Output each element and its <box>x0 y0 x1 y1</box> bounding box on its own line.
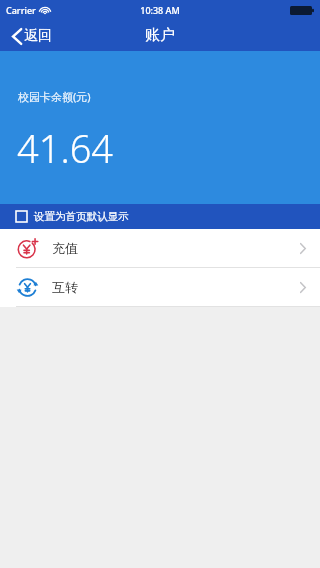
button[interactable]: 设置为首页默认显示 <box>0 204 320 229</box>
staticText: 充值 <box>52 240 78 256</box>
staticText: 互转 <box>52 279 78 295</box>
staticText: 校园卡余额(元) <box>18 89 91 104</box>
other: 充值 <box>17 238 38 259</box>
button[interactable]: 互转 <box>0 268 320 306</box>
button[interactable]: 充值 <box>0 229 320 267</box>
staticText: 设置为首页默认显示 <box>34 210 129 223</box>
staticText: Carrier <box>6 4 36 16</box>
staticText: 返回 <box>24 27 52 45</box>
other: 互转 <box>17 277 38 298</box>
staticText: 41.64 <box>17 122 114 174</box>
staticText: 账户 <box>145 26 175 45</box>
button[interactable]: 返回 <box>0 23 62 49</box>
staticText: 10:38 AM <box>140 4 180 16</box>
